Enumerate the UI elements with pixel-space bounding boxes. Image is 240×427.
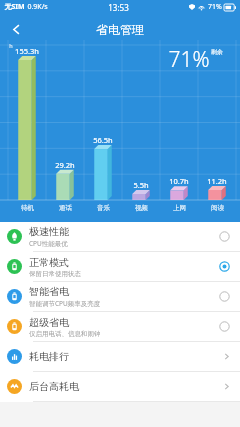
staticText: CPU性能最优 xyxy=(29,239,68,248)
staticText: 10.7h xyxy=(169,176,189,186)
button[interactable]: 智能省电 xyxy=(0,282,240,311)
staticText: 上网 xyxy=(173,204,186,212)
staticText: 71% xyxy=(208,2,222,12)
staticText: 智能调节CPU频率及亮度 xyxy=(29,299,101,308)
button[interactable]: 极速性能 xyxy=(0,222,240,251)
staticText: 阅读 xyxy=(211,204,224,212)
staticText: 智能省电 xyxy=(29,285,69,298)
staticText: 省电管理 xyxy=(96,22,144,37)
staticText: 音乐 xyxy=(97,204,110,212)
button[interactable]: 正常模式 xyxy=(0,252,240,281)
staticText: h xyxy=(9,42,13,49)
staticText: 56.5h xyxy=(93,135,113,145)
staticText: 无SIM xyxy=(4,2,25,12)
staticText: 视频 xyxy=(135,204,148,212)
button[interactable]: 超级省电 xyxy=(0,312,240,341)
button[interactable]: 后台高耗电 xyxy=(0,372,240,401)
staticText: 剩余 xyxy=(211,48,223,56)
staticText: 待机 xyxy=(21,204,34,212)
staticText: 11.2h xyxy=(207,176,227,186)
staticText: 155.3h xyxy=(15,46,39,56)
button[interactable]: 耗电排行 xyxy=(0,342,240,371)
staticText: 29.2h xyxy=(55,160,75,170)
staticText: 保留日常使用状态 xyxy=(29,270,81,278)
staticText: 超级省电 xyxy=(29,316,69,329)
staticText: 极速性能 xyxy=(29,225,69,238)
staticText: 耗电排行 xyxy=(29,350,223,363)
staticText: 0.9K/s xyxy=(27,2,48,12)
staticText: 13:53 xyxy=(108,2,129,13)
staticText: 仅启用电话、信息和闹钟 xyxy=(29,330,101,338)
staticText: 正常模式 xyxy=(29,256,69,269)
button[interactable]: 返回 xyxy=(0,14,32,44)
staticText: 通话 xyxy=(59,204,72,212)
staticText: 5.5h xyxy=(133,180,149,190)
staticText: 71% xyxy=(168,45,210,74)
staticText: 后台高耗电 xyxy=(29,380,223,393)
